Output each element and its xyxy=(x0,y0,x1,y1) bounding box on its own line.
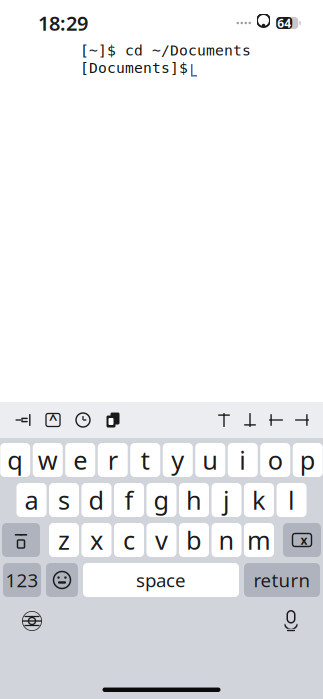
staticText: c xyxy=(123,523,135,557)
button[interactable]: Up xyxy=(211,406,237,434)
staticText: w xyxy=(38,443,58,477)
staticText: s xyxy=(58,483,70,517)
button[interactable]: q xyxy=(0,443,30,477)
staticText: r xyxy=(108,443,118,477)
button[interactable]: e xyxy=(65,443,95,477)
button[interactable]: o xyxy=(260,443,290,477)
button[interactable]: Emoji xyxy=(46,563,78,597)
button[interactable]: t xyxy=(130,443,160,477)
button[interactable]: Next keyboard xyxy=(12,605,52,637)
staticText: g xyxy=(153,483,169,517)
button[interactable]: Control xyxy=(38,406,68,434)
staticText: o xyxy=(268,443,283,477)
staticText: i xyxy=(239,443,246,477)
staticText: ^ xyxy=(49,409,57,429)
staticText: l xyxy=(288,483,295,517)
button[interactable]: g xyxy=(146,483,176,517)
button[interactable]: space xyxy=(83,563,239,597)
button[interactable]: c xyxy=(114,523,144,557)
button[interactable]: Paste xyxy=(98,406,128,434)
button[interactable]: Tab xyxy=(8,406,38,434)
staticText: 123 xyxy=(5,568,38,592)
staticText: y xyxy=(171,443,184,477)
staticText: e xyxy=(73,443,87,477)
staticText: n xyxy=(218,523,234,557)
button[interactable]: j xyxy=(211,483,241,517)
button[interactable]: k xyxy=(244,483,274,517)
staticText: x xyxy=(90,523,103,557)
staticText: q xyxy=(7,443,23,477)
staticText: t xyxy=(141,443,150,477)
staticText: u xyxy=(202,443,218,477)
button[interactable]: n xyxy=(211,523,241,557)
staticText: [Documents]$ xyxy=(80,60,188,76)
button[interactable]: b xyxy=(179,523,209,557)
button[interactable]: v xyxy=(146,523,176,557)
staticText: k xyxy=(252,483,266,517)
staticText: j xyxy=(223,483,230,517)
button[interactable]: Left xyxy=(263,406,289,434)
button[interactable]: u xyxy=(195,443,225,477)
button[interactable]: m xyxy=(244,523,274,557)
staticText: 64 xyxy=(277,15,291,31)
staticText: h xyxy=(186,483,202,517)
staticText: f xyxy=(124,483,133,517)
button[interactable]: f xyxy=(114,483,144,517)
button[interactable]: Shift xyxy=(2,523,40,557)
staticText: [~]$ cd ~/Documents xyxy=(80,42,251,59)
staticText: z xyxy=(58,523,70,557)
button[interactable]: i xyxy=(228,443,258,477)
button[interactable]: r xyxy=(98,443,128,477)
button[interactable]: y xyxy=(163,443,193,477)
staticText: space xyxy=(136,568,186,592)
button[interactable]: l xyxy=(276,483,306,517)
button[interactable]: a xyxy=(16,483,46,517)
button[interactable]: p xyxy=(293,443,323,477)
staticText: b xyxy=(186,523,202,557)
staticText: return xyxy=(253,568,310,592)
button[interactable]: Delete xyxy=(283,523,321,557)
button[interactable]: Dictate xyxy=(271,605,311,637)
button[interactable]: d xyxy=(81,483,111,517)
staticText: x xyxy=(300,532,307,548)
staticText: m xyxy=(247,523,271,557)
staticText: 18:29 xyxy=(38,10,88,36)
button[interactable]: Right xyxy=(289,406,315,434)
button[interactable]: Down xyxy=(237,406,263,434)
button[interactable]: z xyxy=(49,523,79,557)
staticText: d xyxy=(88,483,104,517)
button[interactable]: s xyxy=(49,483,79,517)
button[interactable]: return xyxy=(244,563,320,597)
button[interactable]: w xyxy=(33,443,63,477)
button[interactable]: x xyxy=(81,523,111,557)
button[interactable]: History xyxy=(68,406,98,434)
button[interactable]: 123 xyxy=(3,563,41,597)
staticText: p xyxy=(300,443,316,477)
staticText: v xyxy=(155,523,168,557)
button[interactable]: h xyxy=(179,483,209,517)
staticText: a xyxy=(24,483,38,517)
